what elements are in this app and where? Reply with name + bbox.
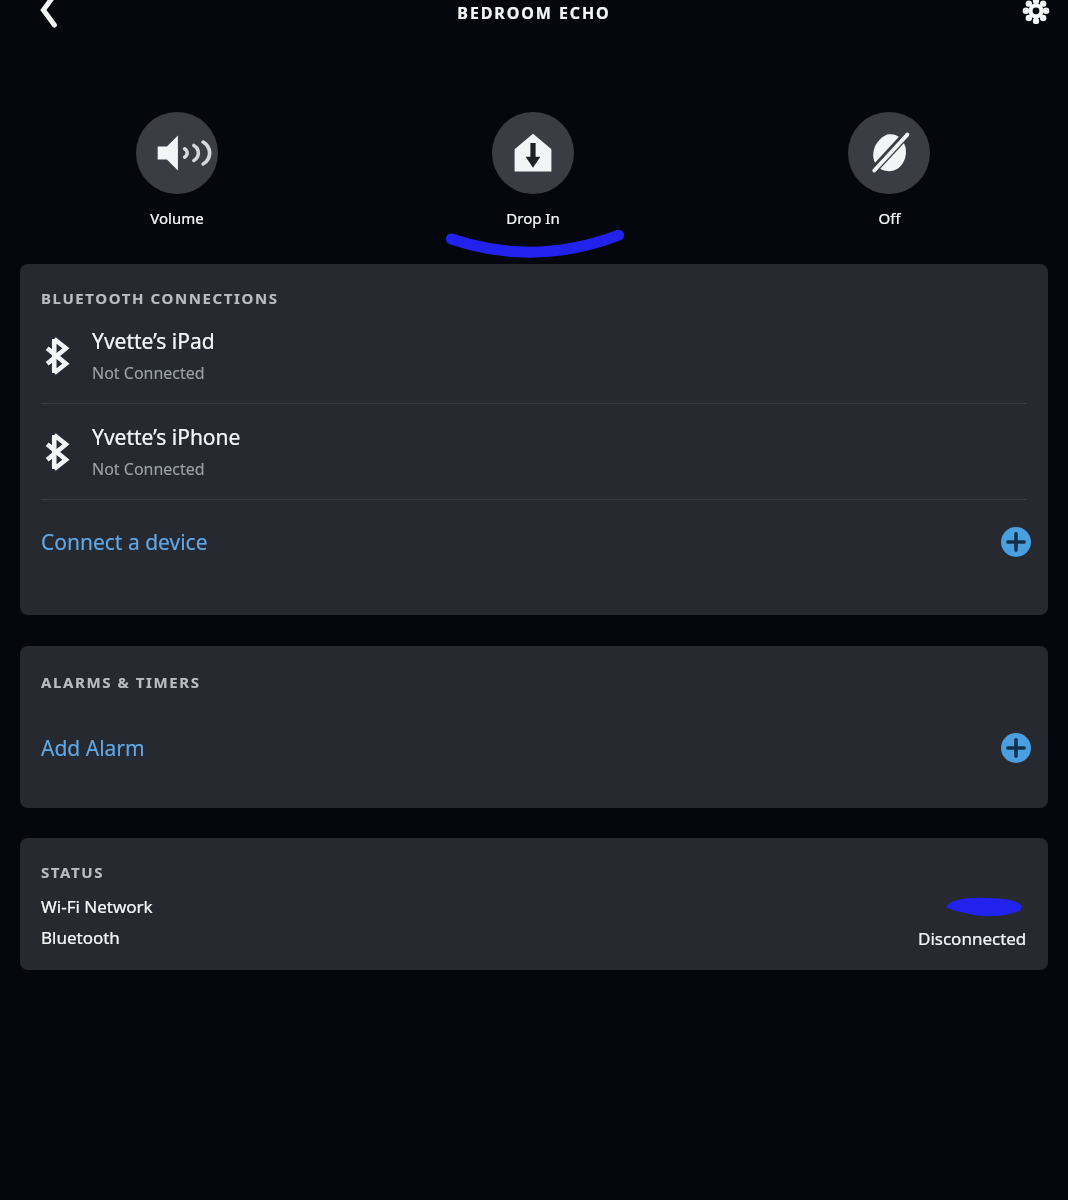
staticText: STATUS (41, 862, 105, 882)
button[interactable]: Volume (97, 112, 257, 228)
other: Add bluetooth device (1001, 527, 1031, 557)
staticText: Not Connected (92, 458, 205, 480)
staticText: BLUETOOTH CONNECTIONS (41, 288, 279, 308)
staticText: ALARMS & TIMERS (41, 672, 201, 692)
button[interactable]: Drop In (453, 112, 613, 228)
staticText: Wi-Fi Network (41, 895, 153, 918)
button[interactable]: Off (809, 112, 969, 228)
button[interactable]: Back (22, 0, 78, 34)
staticText: Off (878, 208, 901, 228)
staticText: Volume (150, 208, 204, 228)
staticText: Bluetooth (41, 926, 120, 949)
other: Add alarm (1001, 733, 1031, 763)
button[interactable]: Yvette’s iPhone (20, 404, 1048, 499)
staticText: Disconnected (918, 927, 1027, 950)
button[interactable]: Yvette’s iPad (20, 308, 1048, 403)
staticText: Drop In (506, 208, 560, 228)
button[interactable]: Connect a device (20, 500, 1048, 584)
staticText: Yvette’s iPad (92, 327, 215, 356)
button[interactable]: Settings (1012, 0, 1060, 30)
staticText: Add Alarm (41, 734, 145, 763)
button[interactable]: Add Alarm (20, 706, 1048, 790)
staticText: Connect a device (41, 528, 208, 557)
staticText: Yvette’s iPhone (92, 423, 241, 452)
staticText: BEDROOM ECHO (457, 2, 611, 24)
staticText: Not Connected (92, 362, 205, 384)
